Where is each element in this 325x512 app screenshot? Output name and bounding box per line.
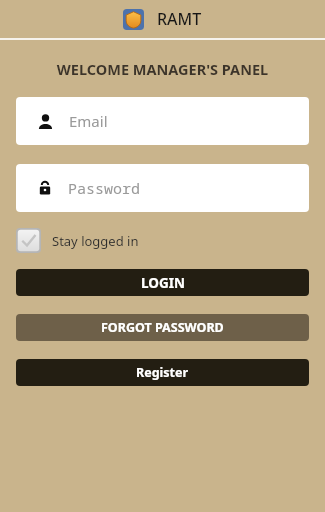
button[interactable]: Stay logged in xyxy=(16,228,139,253)
staticText: Password xyxy=(68,178,141,198)
staticText: LOGIN xyxy=(141,274,185,292)
button[interactable]: FORGOT PASSWORD xyxy=(16,314,309,341)
staticText: RAMT xyxy=(157,8,202,30)
button[interactable]: Password xyxy=(16,164,309,212)
staticText: Email xyxy=(69,111,108,131)
staticText: FORGOT PASSWORD xyxy=(101,319,224,336)
other: Email xyxy=(38,114,53,129)
staticText: Register xyxy=(136,364,189,381)
other: Password xyxy=(38,181,52,195)
button[interactable]: Register xyxy=(16,359,309,386)
staticText: WELCOME MANAGER'S PANEL xyxy=(0,59,325,79)
button[interactable]: LOGIN xyxy=(16,269,309,296)
staticText: Stay logged in xyxy=(52,232,139,250)
button[interactable]: Email xyxy=(16,97,309,145)
